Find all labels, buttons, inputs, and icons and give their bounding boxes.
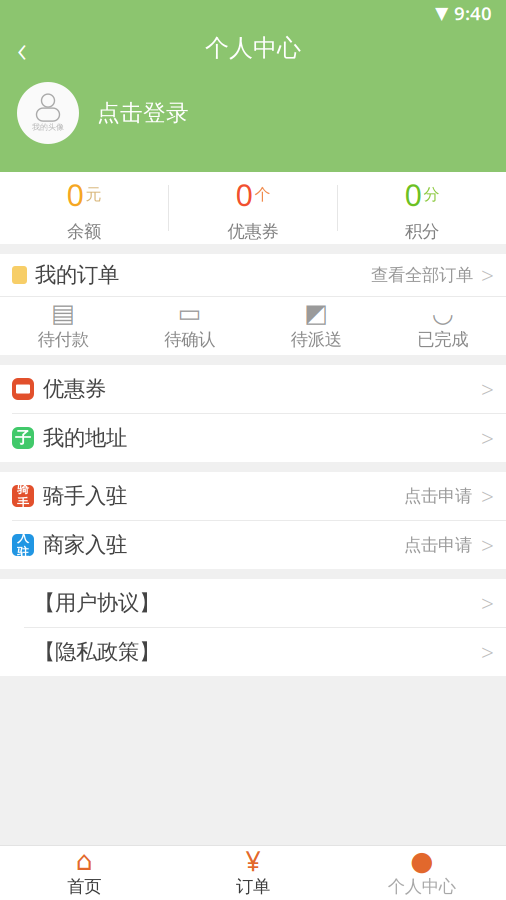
staticText: 个: [254, 184, 270, 204]
staticText: 0: [235, 174, 253, 215]
staticText: >: [481, 481, 494, 511]
staticText: 骑手: [17, 481, 29, 511]
staticText: 优惠券: [43, 376, 106, 402]
staticText: 0: [404, 174, 422, 215]
staticText: ¥: [245, 843, 260, 878]
button[interactable]: ◩: [253, 302, 379, 350]
staticText: 优惠券: [227, 221, 278, 242]
button[interactable]: ◡: [379, 302, 506, 350]
staticText: 【隐私政策】: [34, 639, 160, 665]
button[interactable]: 入驻: [0, 521, 506, 569]
staticText: >: [481, 588, 494, 618]
staticText: 0: [66, 174, 84, 215]
staticText: >: [481, 260, 494, 290]
staticText: 个人中心: [205, 33, 301, 63]
staticText: ▼: [435, 3, 448, 23]
staticText: >: [481, 637, 494, 667]
staticText: ◡: [432, 298, 454, 327]
staticText: 入驻: [17, 530, 29, 560]
button[interactable]: 我的头像: [17, 82, 79, 144]
staticText: ◩: [304, 298, 328, 327]
staticText: 待派送: [291, 329, 342, 350]
staticText: >: [481, 374, 494, 404]
staticText: 9:40: [454, 1, 492, 25]
staticText: >: [481, 423, 494, 453]
button[interactable]: 0: [169, 161, 337, 255]
staticText: 骑手入驻: [43, 483, 127, 509]
staticText: 子: [15, 428, 31, 448]
button[interactable]: 【隐私政策】: [0, 628, 506, 676]
staticText: 余额: [67, 221, 101, 242]
staticText: ●: [410, 846, 433, 876]
button[interactable]: 优惠券: [0, 365, 506, 413]
staticText: 点击申请: [404, 534, 472, 556]
staticText: 我的地址: [43, 425, 127, 451]
button[interactable]: ¥: [169, 843, 337, 900]
button[interactable]: ●: [337, 843, 506, 900]
staticText: ‹: [17, 23, 27, 73]
button[interactable]: 子: [0, 414, 506, 462]
staticText: 点击登录: [97, 99, 189, 127]
staticText: ⌂: [76, 846, 93, 876]
button[interactable]: 【用户协议】: [0, 579, 506, 627]
button[interactable]: 0: [338, 161, 506, 255]
staticText: 元: [85, 184, 101, 204]
staticText: ▭: [178, 298, 202, 327]
staticText: 待确认: [164, 329, 215, 350]
button[interactable]: ⌂: [0, 843, 169, 900]
button[interactable]: ▭: [126, 302, 253, 350]
staticText: 我的头像: [32, 122, 64, 132]
staticText: 我的订单: [35, 262, 119, 288]
button[interactable]: 点击登录: [97, 99, 189, 127]
staticText: 商家入驻: [43, 532, 127, 558]
button[interactable]: 0: [0, 161, 168, 255]
button[interactable]: 返回: [0, 26, 44, 70]
staticText: 订单: [236, 876, 270, 897]
staticText: 积分: [405, 221, 439, 242]
staticText: >: [481, 530, 494, 560]
button[interactable]: 骑手: [0, 472, 506, 520]
staticText: ▤: [51, 298, 75, 327]
staticText: 已完成: [417, 329, 468, 350]
staticText: 个人中心: [388, 876, 456, 897]
staticText: 首页: [67, 876, 101, 897]
button[interactable]: 我的订单: [0, 254, 506, 296]
button[interactable]: ▤: [0, 302, 126, 350]
staticText: 分: [423, 184, 439, 204]
staticText: 点击申请: [404, 485, 472, 507]
staticText: 【用户协议】: [34, 590, 160, 616]
staticText: 待付款: [38, 329, 89, 350]
staticText: 查看全部订单: [371, 264, 473, 286]
